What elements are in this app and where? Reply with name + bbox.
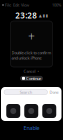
staticText: Cancel • [23,69,39,74]
button[interactable]: App [24,104,38,118]
staticText: + [28,29,35,45]
button[interactable]: App [42,104,56,118]
staticText: Continue [26,76,41,81]
staticText: 100% [52,2,61,8]
button[interactable]: Enable [0,125,63,131]
staticText: Search [20,89,32,95]
button[interactable]: Continue [20,76,43,81]
button[interactable]: Search [4,90,47,95]
staticText: File Edit View [5,2,29,8]
staticText: 23:28 [15,10,37,21]
staticText: ▲ ▮ ▮ [39,13,48,18]
staticText: Double-click to confirm and unlock iPhon… [11,50,51,60]
staticText: Done [49,89,58,95]
button[interactable]: App [6,104,20,118]
button[interactable]: Done [49,89,58,95]
staticText: Enable [23,124,39,132]
